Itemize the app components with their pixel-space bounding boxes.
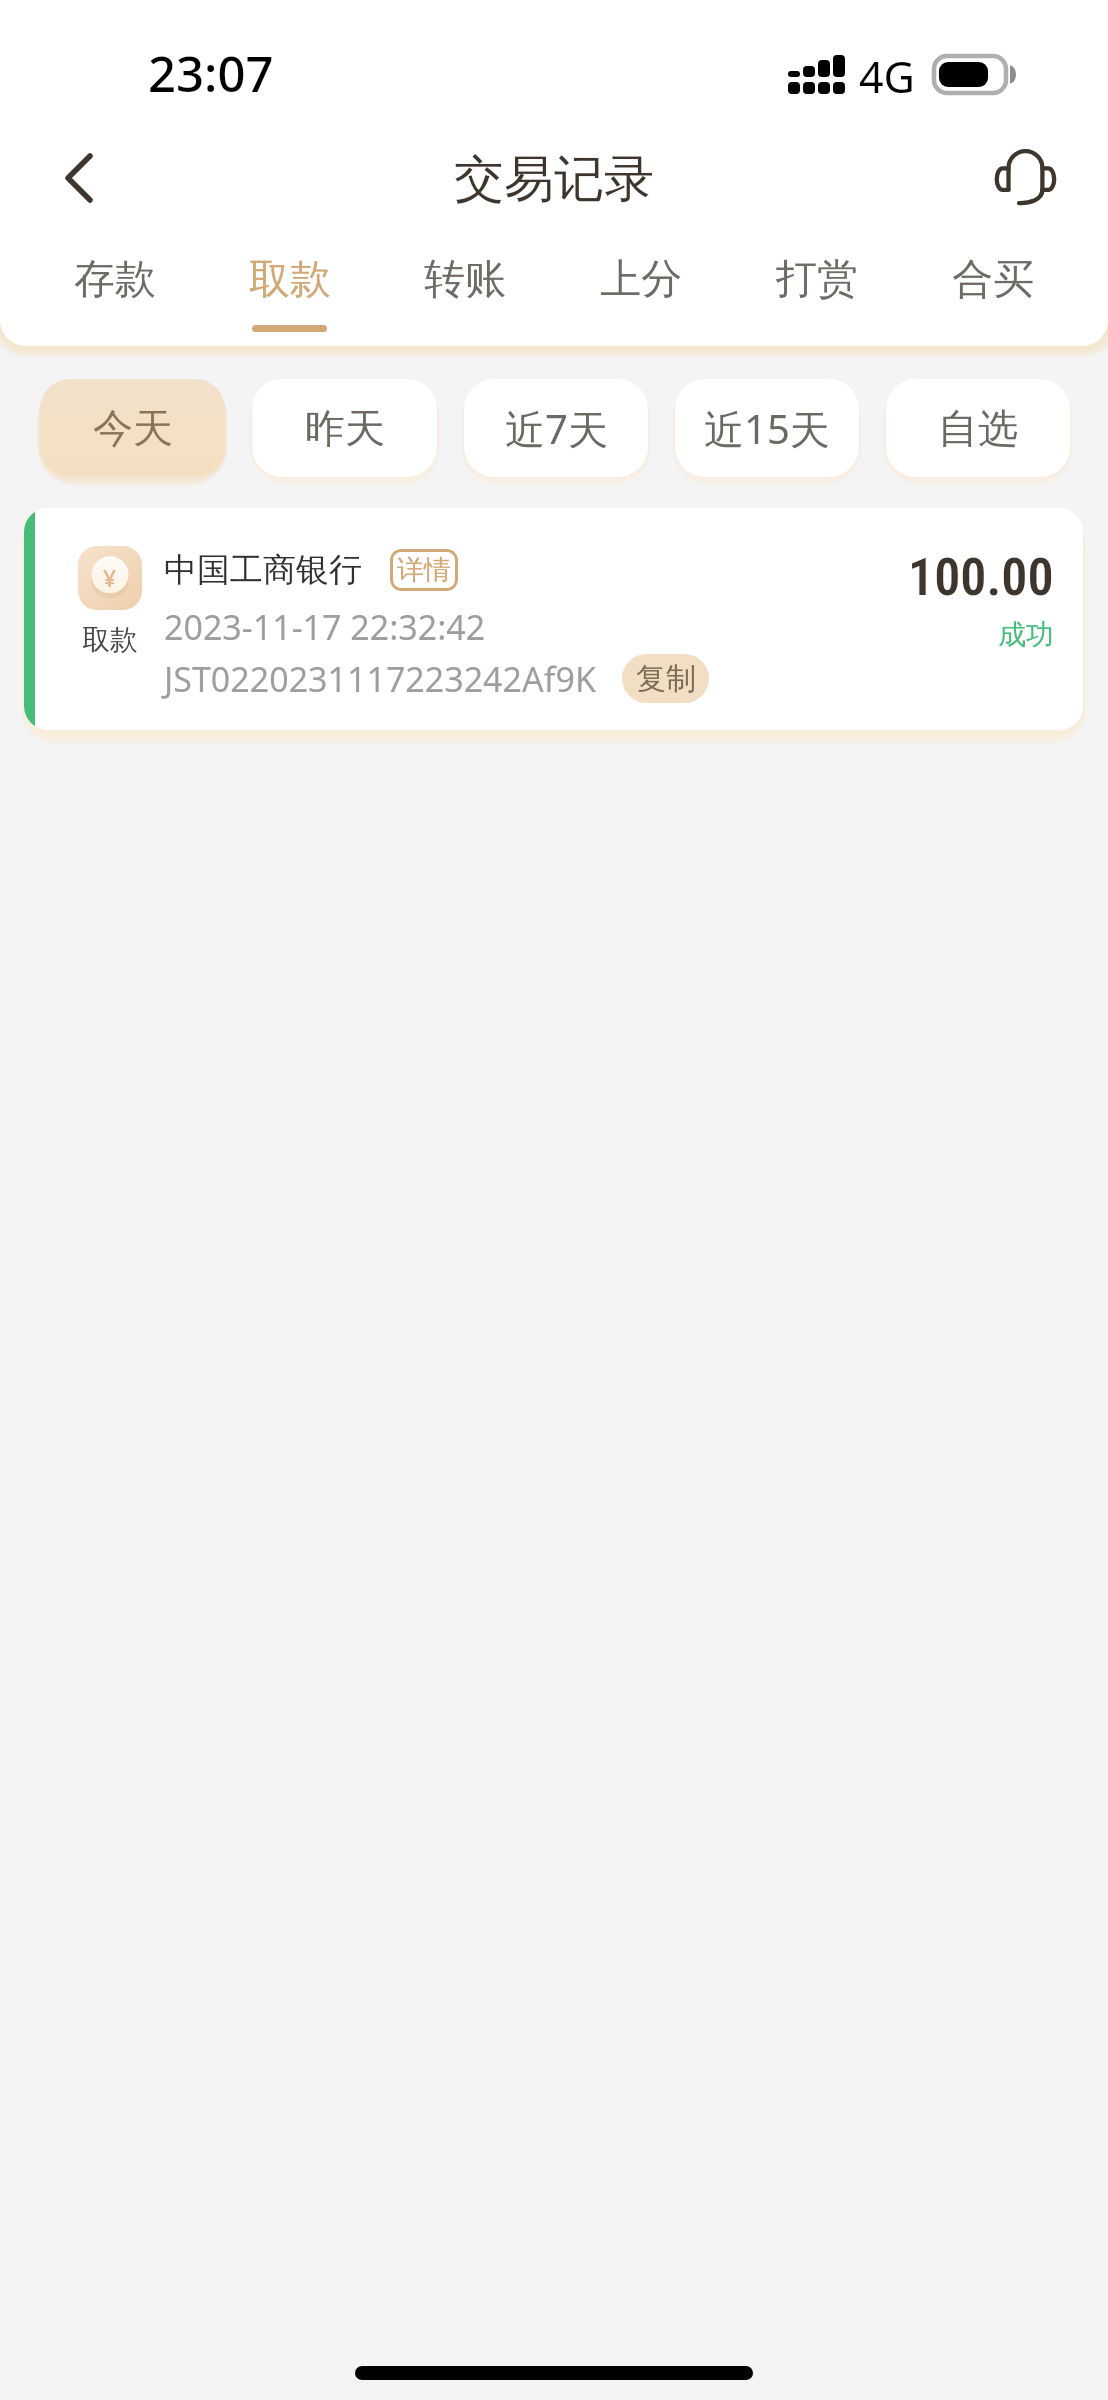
staticText: 成功 [998, 617, 1054, 652]
staticText: ¥ [103, 562, 117, 593]
button[interactable]: 取款 [202, 242, 377, 346]
button[interactable]: 详情 [390, 549, 458, 591]
button[interactable]: Customer service [982, 143, 1068, 211]
button[interactable]: 打赏 [729, 242, 905, 346]
staticText: 打赏 [776, 254, 858, 306]
staticText: 复制 [636, 660, 696, 698]
button[interactable]: 合买 [905, 242, 1081, 346]
button[interactable]: ¥ [24, 508, 1083, 730]
staticText: 交易记录 [454, 148, 654, 211]
button[interactable]: 自选 [886, 379, 1070, 477]
staticText: 近7天 [505, 401, 608, 456]
staticText: 近15天 [704, 401, 830, 456]
staticText: 今天 [93, 403, 173, 453]
staticText: 自选 [938, 403, 1018, 453]
button[interactable]: 存款 [27, 242, 202, 346]
staticText: 23:07 [148, 40, 274, 107]
staticText: 取款 [249, 254, 331, 306]
staticText: 存款 [74, 254, 156, 306]
staticText: 昨天 [305, 403, 385, 453]
staticText: 上分 [600, 254, 682, 306]
button[interactable]: 昨天 [252, 379, 437, 477]
staticText: 100.00 [908, 547, 1054, 608]
staticText: 转账 [424, 254, 506, 306]
staticText: 详情 [397, 553, 451, 587]
staticText: 合买 [952, 254, 1034, 306]
staticText: 中国工商银行 [164, 549, 362, 591]
button[interactable]: 复制 [622, 654, 709, 703]
button[interactable]: 上分 [553, 242, 729, 346]
staticText: 取款 [82, 622, 138, 657]
button[interactable]: 近15天 [675, 379, 859, 477]
button[interactable]: 今天 [40, 379, 225, 477]
button[interactable]: 转账 [377, 242, 553, 346]
staticText: 2023-11-17 22:32:42 [164, 604, 486, 650]
button[interactable]: 近7天 [464, 379, 648, 477]
button[interactable]: Back [50, 147, 108, 209]
staticText: 4G [859, 47, 915, 106]
staticText: JST0220231117223242Af9K [164, 656, 596, 702]
